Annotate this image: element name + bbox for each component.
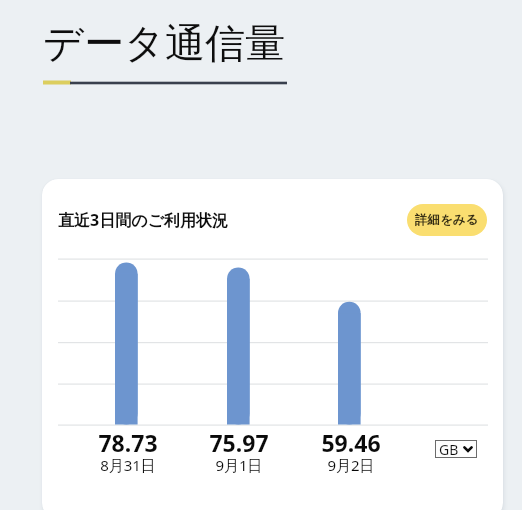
staticText: データ通信量: [43, 18, 285, 68]
button[interactable]: 詳細をみる: [407, 204, 487, 236]
staticText: 59.46: [321, 427, 381, 457]
staticText: 8月31日: [100, 455, 156, 475]
staticText: GB: [439, 440, 459, 458]
button[interactable]: Unit selector GB: [435, 440, 477, 458]
staticText: 75.97: [209, 427, 269, 457]
staticText: 詳細をみる: [415, 212, 479, 228]
staticText: 9月2日: [327, 455, 375, 475]
staticText: 9月1日: [215, 455, 263, 475]
staticText: 直近3日間のご利用状況: [58, 209, 228, 231]
staticText: 78.73: [98, 427, 158, 457]
